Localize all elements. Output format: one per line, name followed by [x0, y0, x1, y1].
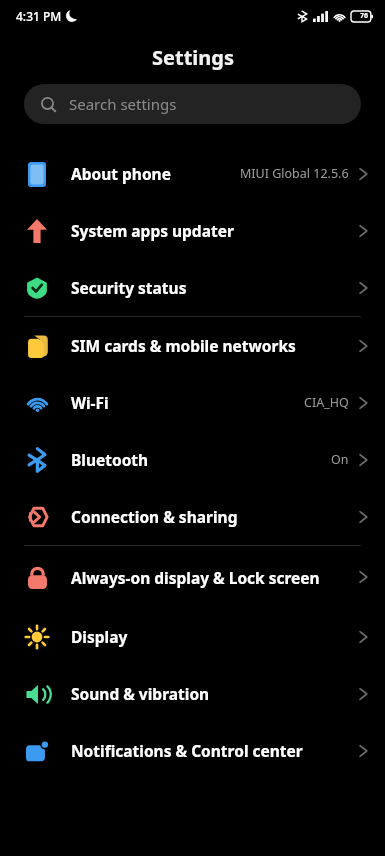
button[interactable]: About phone: [0, 145, 385, 202]
staticText: CIA_HQ: [304, 394, 349, 411]
staticText: Always-on display & Lock screen: [71, 567, 352, 588]
staticText: Sound & vibration: [71, 683, 352, 704]
staticText: System apps updater: [71, 220, 352, 241]
button[interactable]: Connection & sharing: [0, 488, 385, 545]
staticText: SIM cards & mobile networks: [71, 335, 352, 356]
button[interactable]: System apps updater: [0, 202, 385, 259]
staticText: Bluetooth: [71, 449, 331, 470]
button[interactable]: Security status: [0, 259, 385, 316]
staticText: Display: [71, 626, 352, 647]
button[interactable]: Always-on display & Lock screen: [0, 546, 385, 608]
staticText: Notifications & Control center: [71, 740, 352, 761]
button[interactable]: SIM cards & mobile networks: [0, 317, 385, 374]
staticText: Settings: [152, 44, 234, 71]
staticText: About phone: [71, 163, 240, 184]
staticText: Security status: [71, 277, 352, 298]
staticText: Connection & sharing: [71, 506, 352, 527]
staticText: 76: [360, 11, 369, 21]
button[interactable]: Notifications & Control center: [0, 722, 385, 779]
button[interactable]: Bluetooth: [0, 431, 385, 488]
button[interactable]: Search settings: [24, 84, 361, 124]
staticText: Search settings: [69, 94, 177, 114]
button[interactable]: Sound & vibration: [0, 665, 385, 722]
button[interactable]: Display: [0, 608, 385, 665]
staticText: 4:31 PM: [16, 8, 62, 24]
staticText: MIUI Global 12.5.6: [240, 165, 349, 182]
button[interactable]: Wi-Fi: [0, 374, 385, 431]
staticText: On: [331, 451, 349, 468]
staticText: Wi-Fi: [71, 392, 304, 413]
